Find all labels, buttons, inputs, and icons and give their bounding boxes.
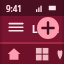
staticText: 9:41 — [6, 3, 22, 14]
staticText: Library — [32, 22, 59, 36]
button[interactable]: Add — [37, 17, 59, 39]
button[interactable]: Saved — [56, 44, 64, 64]
button[interactable]: Menu — [5, 18, 27, 40]
button[interactable]: Home — [0, 44, 28, 64]
button[interactable]: Browse — [28, 44, 56, 64]
